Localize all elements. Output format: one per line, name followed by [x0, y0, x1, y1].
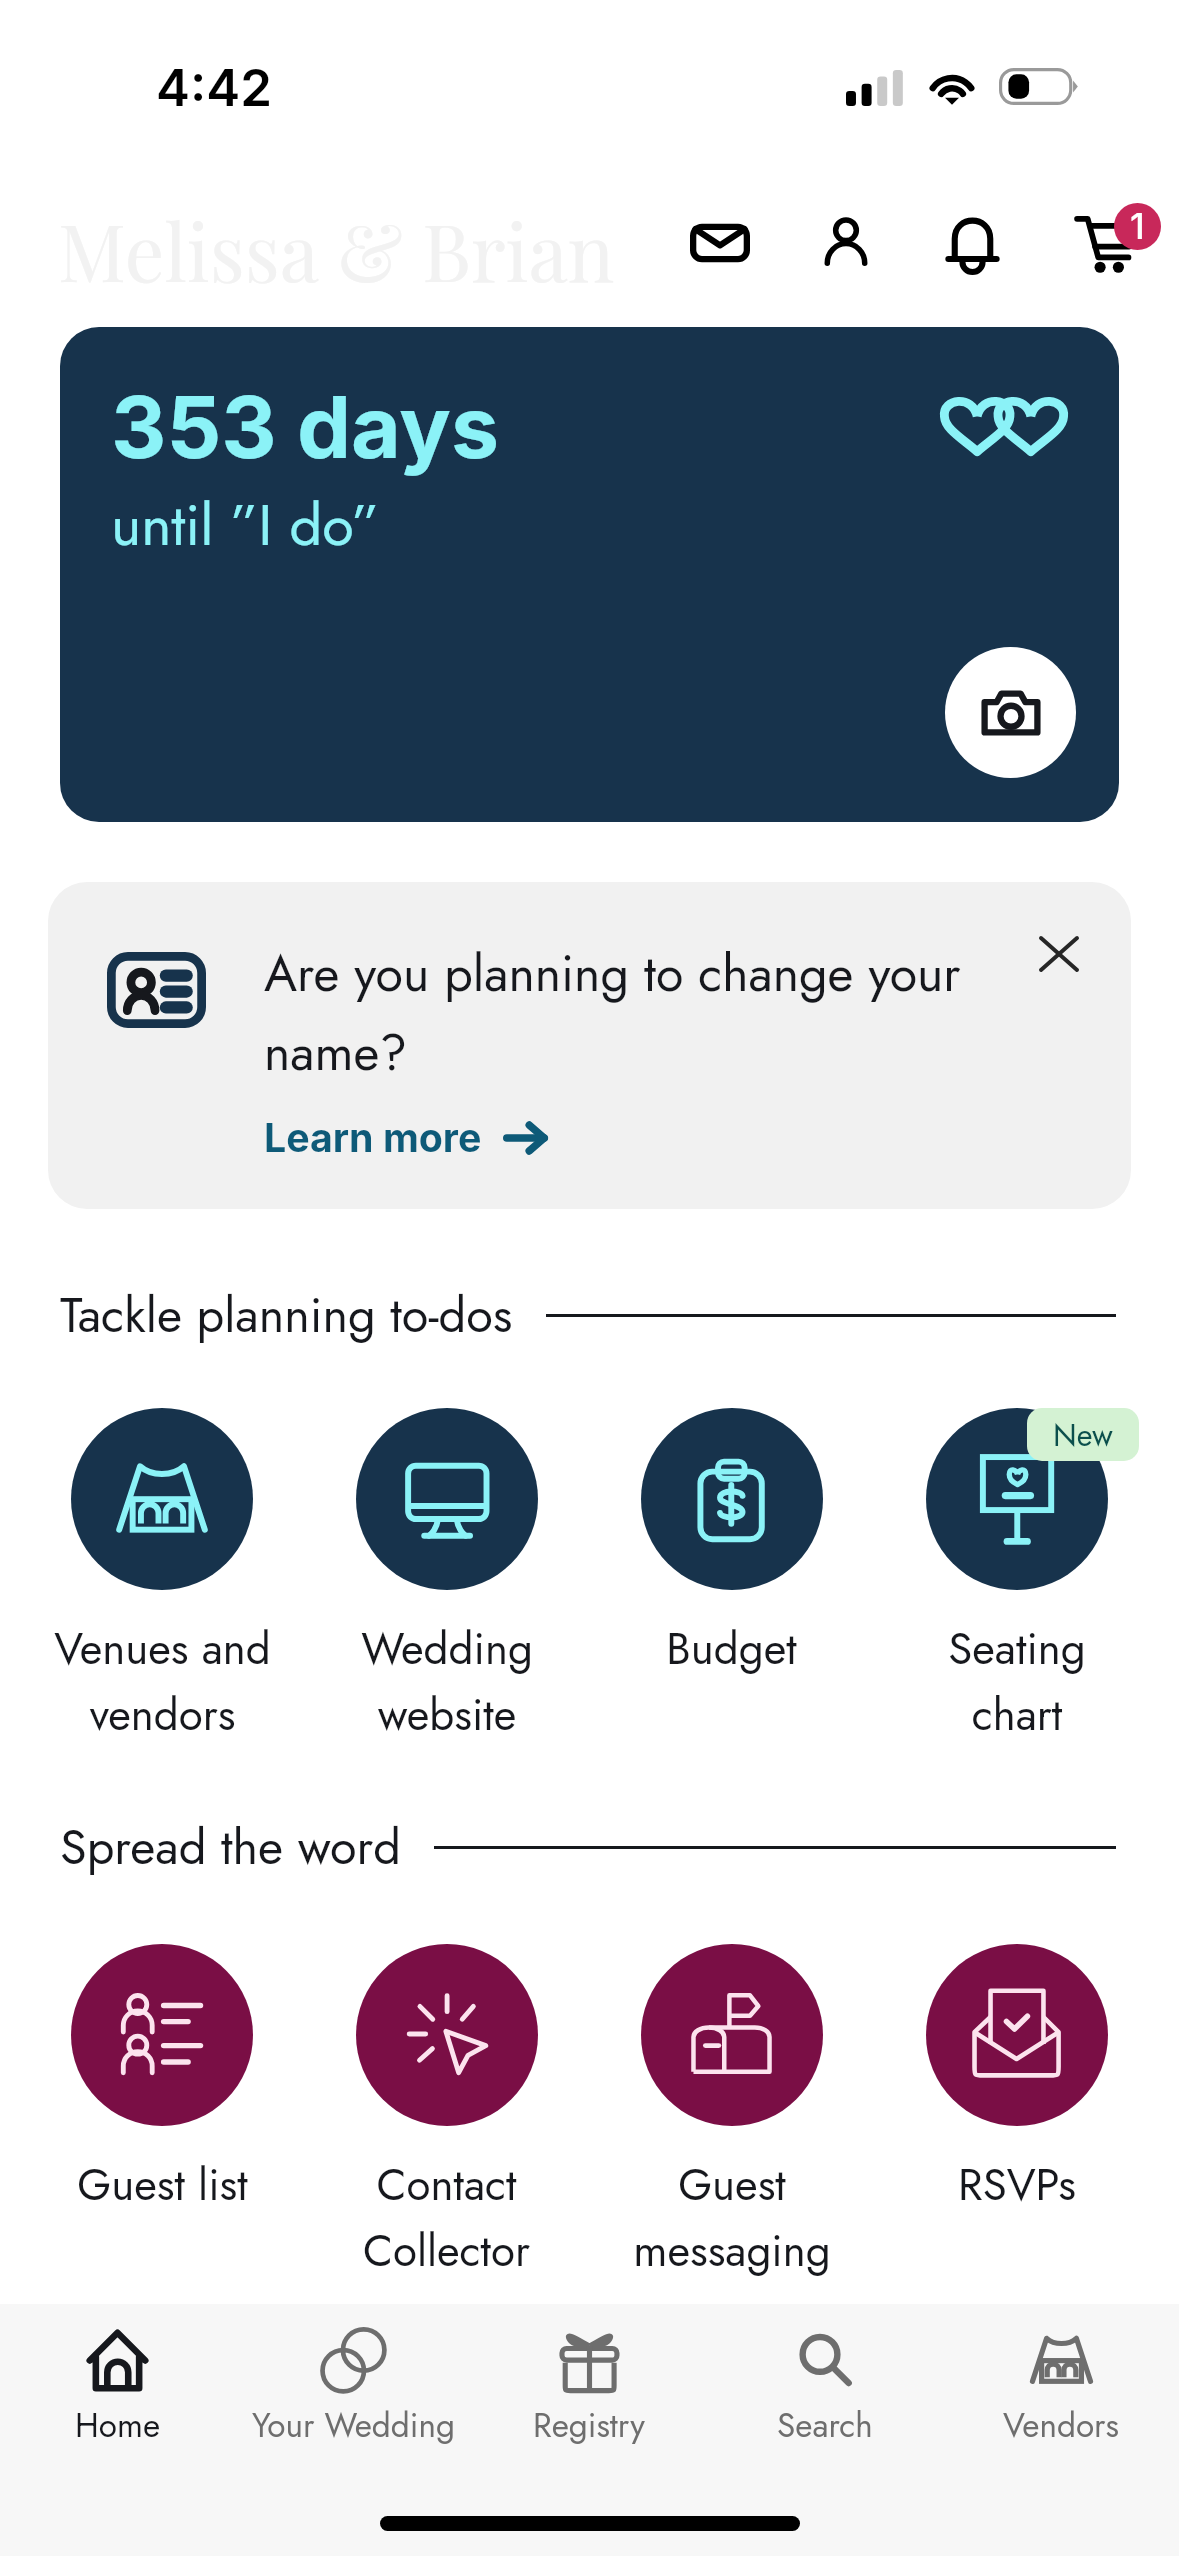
staticText: Home [75, 2401, 161, 2449]
staticText: Vendors [1003, 2401, 1119, 2449]
staticText: Your Wedding [252, 2401, 455, 2449]
staticText: Guest messaging [633, 2153, 831, 2282]
staticText: Budget [666, 1617, 797, 1680]
button[interactable]: Your Wedding [235, 2304, 471, 2449]
staticText: Guest list [77, 2153, 248, 2216]
button[interactable]: Wedding website [304, 1408, 589, 1746]
staticText: New [1053, 1413, 1113, 1457]
staticText: until ”I do” [111, 483, 380, 566]
button[interactable]: Registry [471, 2304, 707, 2449]
button[interactable]: Guest list [20, 1944, 304, 2216]
staticText: Seating chart [948, 1617, 1086, 1746]
button[interactable]: Profile [801, 197, 891, 287]
staticText: Melissa & Brian [58, 197, 615, 301]
button[interactable]: 353 days [60, 327, 1119, 822]
staticText: Spread the word [60, 1812, 401, 1882]
button[interactable]: Budget [589, 1408, 874, 1680]
staticText: Tackle planning to-dos [60, 1280, 513, 1350]
button[interactable]: Cart [1076, 216, 1178, 276]
button[interactable]: Guest messaging [589, 1944, 874, 2282]
staticText: Search [777, 2401, 873, 2449]
staticText: Learn more [264, 1114, 482, 1162]
button[interactable]: New [874, 1408, 1159, 1746]
button[interactable]: Add photo [945, 647, 1076, 778]
button[interactable]: Dismiss [1017, 912, 1101, 996]
staticText: Registry [533, 2401, 645, 2449]
button[interactable]: Vendors [943, 2304, 1179, 2449]
button[interactable]: Notifications [927, 199, 1017, 289]
button[interactable]: Venues and vendors [20, 1408, 304, 1746]
staticText: 4:42 [156, 57, 272, 119]
button[interactable]: Are you planning to change your name? [48, 882, 1131, 1209]
button[interactable]: Contact Collector [304, 1944, 589, 2282]
staticText: Venues and vendors [54, 1617, 271, 1746]
staticText: RSVPs [958, 2153, 1076, 2216]
button[interactable]: Messages [675, 198, 765, 288]
button[interactable]: Search [707, 2304, 943, 2449]
button[interactable]: RSVPs [874, 1944, 1159, 2216]
staticText: 353 days [111, 375, 500, 479]
button[interactable]: Learn more [264, 1114, 548, 1162]
staticText: 1 [1130, 205, 1145, 248]
staticText: Wedding website [361, 1617, 533, 1746]
staticText: Contact Collector [363, 2153, 530, 2282]
staticText: Are you planning to change your name? [264, 937, 972, 1089]
button[interactable]: Home [0, 2304, 235, 2449]
